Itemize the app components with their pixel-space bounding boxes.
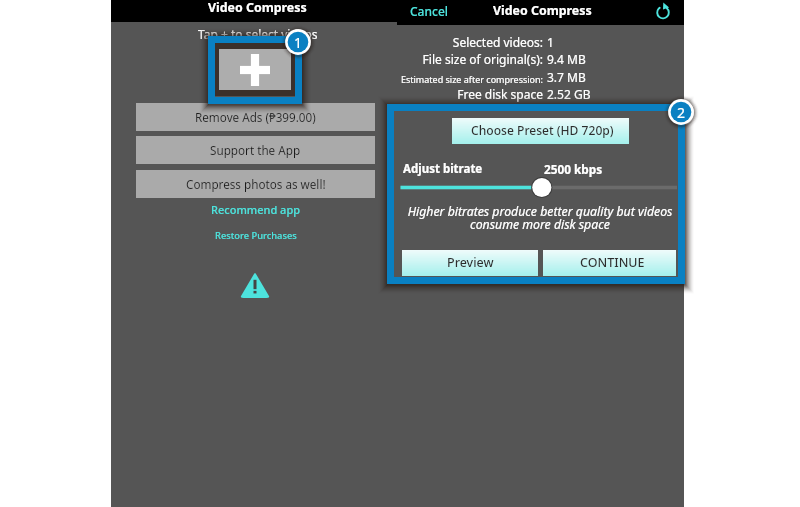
button[interactable]: Add video	[219, 49, 291, 90]
staticText: Remove Ads (₱399.00)	[195, 109, 316, 125]
staticText: CONTINUE	[580, 254, 645, 271]
button[interactable]: Redo	[653, 1, 673, 21]
staticText: Choose Preset (HD 720p)	[471, 122, 614, 138]
button[interactable]: Remove Ads (₱399.00)	[136, 103, 375, 131]
button[interactable]: Choose Preset (HD 720p)	[452, 118, 629, 144]
button[interactable]: Bitrate slider	[397, 177, 684, 198]
button[interactable]: Compress photos as well!	[136, 170, 375, 198]
staticText: Tap + to select videos	[198, 26, 318, 42]
staticText: 3.7 MB	[547, 69, 586, 85]
staticText: Preview	[447, 254, 494, 271]
button[interactable]: Preview	[402, 250, 538, 276]
staticText: Restore Purchases	[215, 229, 297, 242]
staticText: Video Compress	[208, 0, 307, 16]
staticText: Cancel	[410, 3, 449, 19]
staticText: Compress photos as well!	[186, 176, 326, 192]
staticText: Selected videos:	[452, 34, 543, 50]
staticText: Higher bitrates produce better quality b…	[401, 203, 679, 233]
button[interactable]: Support the App	[136, 136, 375, 164]
button[interactable]: Recommend app	[205, 200, 307, 219]
staticText: File size of original(s):	[422, 51, 543, 67]
button[interactable]: Restore Purchases	[209, 227, 303, 244]
staticText: 2	[677, 103, 686, 122]
staticText: 1	[547, 34, 554, 50]
staticText: 2.52 GB	[547, 86, 591, 102]
staticText: 2500 kbps	[544, 161, 603, 177]
staticText: Free disk space	[457, 86, 543, 102]
staticText: Adjust bitrate	[403, 161, 483, 177]
button[interactable]: Cancel	[407, 1, 452, 21]
other: Add video	[240, 54, 270, 86]
staticText: Recommend app	[211, 202, 301, 217]
staticText: Estimated size after compression:	[400, 73, 543, 85]
staticText: 9.4 MB	[547, 51, 586, 67]
staticText: Video Compress	[493, 2, 592, 19]
staticText: 1	[294, 33, 303, 52]
button[interactable]: CONTINUE	[543, 250, 676, 276]
staticText: Support the App	[210, 142, 301, 158]
